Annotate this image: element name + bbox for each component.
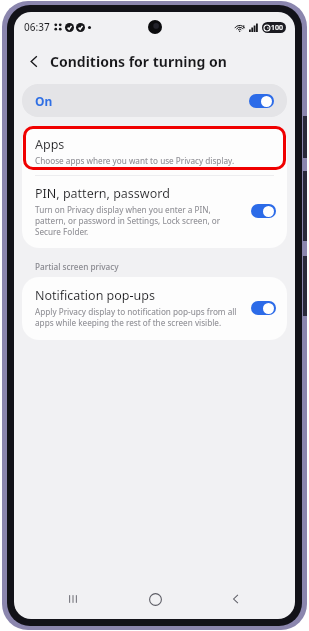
button[interactable]: On [22, 84, 287, 117]
staticText: Partial screen privacy [35, 261, 119, 272]
staticText: Choose apps where you want to use Privac… [35, 155, 235, 166]
button[interactable]: Notification pop-ups [22, 277, 287, 340]
button[interactable]: Apps [22, 126, 287, 175]
staticText: Apply Privacy display to notification po… [35, 306, 243, 328]
button[interactable]: Home [133, 579, 177, 619]
staticText: Apps [35, 136, 65, 153]
button[interactable]: Toggle on [249, 94, 274, 108]
button[interactable]: Toggle on [251, 204, 276, 218]
staticText: 100 [271, 23, 284, 33]
button[interactable]: Recents [51, 579, 95, 619]
button[interactable]: Back [214, 579, 258, 619]
button[interactable]: Toggle on [251, 301, 276, 315]
button[interactable]: Back [20, 47, 48, 75]
staticText: Notification pop-ups [35, 287, 155, 304]
staticText: Conditions for turning on [50, 52, 227, 71]
staticText: On [35, 93, 53, 109]
button[interactable]: PIN, pattern, password [22, 176, 287, 248]
staticText: PIN, pattern, password [35, 185, 170, 202]
staticText: Turn on Privacy display when you enter a… [35, 204, 243, 237]
staticText: 06:37 [24, 20, 50, 34]
